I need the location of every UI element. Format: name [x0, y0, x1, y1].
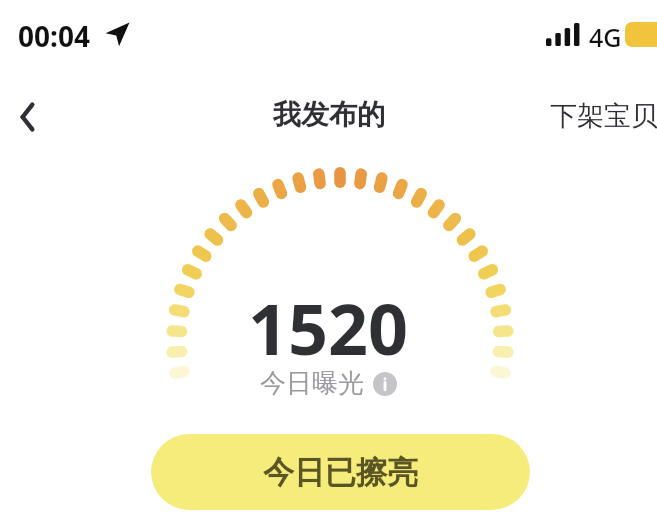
staticText: 我发布的	[273, 97, 385, 132]
staticText: 今日曝光	[260, 367, 364, 400]
button[interactable]: 下架宝贝	[546, 93, 657, 139]
button[interactable]: Back	[1, 90, 55, 144]
staticText: 1520	[248, 280, 409, 375]
button[interactable]: Info	[373, 372, 397, 396]
button[interactable]: 今日已擦亮	[151, 434, 530, 510]
staticText: 00:04	[18, 17, 90, 55]
staticText: 今日已擦亮	[263, 453, 418, 492]
staticText: 4G	[589, 20, 622, 54]
staticText: 下架宝贝	[550, 99, 657, 133]
